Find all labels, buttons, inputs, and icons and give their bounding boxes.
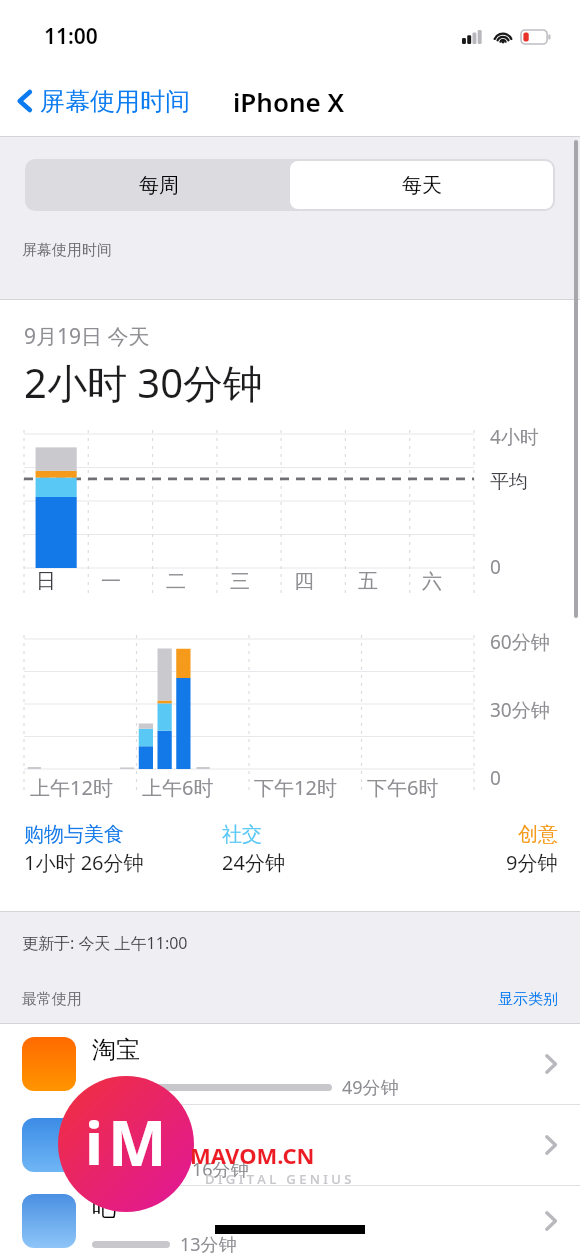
- staticText: 上午6时: [142, 774, 214, 801]
- other: Back: [14, 85, 36, 117]
- staticText: 下午12时: [254, 774, 337, 801]
- staticText: 二: [166, 569, 186, 594]
- staticText: i: [85, 1101, 103, 1183]
- staticText: 屏幕使用时间: [22, 241, 112, 260]
- staticText: 9月19日 今天: [24, 322, 150, 351]
- staticText: 淘宝: [92, 1035, 140, 1065]
- staticText: iPhone X: [233, 84, 345, 119]
- staticText: 30分钟: [490, 697, 550, 723]
- staticText: 每周: [139, 173, 179, 198]
- staticText: 0: [490, 554, 501, 580]
- staticText: 下午6时: [367, 774, 439, 801]
- staticText: 购物与美食: [24, 822, 124, 847]
- staticText: 三: [230, 569, 250, 594]
- staticText: 六: [422, 569, 442, 594]
- staticText: 16分钟: [192, 1157, 249, 1182]
- staticText: 日: [36, 569, 56, 594]
- staticText: 更新于: 今天 上午11:00: [22, 932, 188, 954]
- staticText: 0: [490, 765, 501, 791]
- staticText: 屏幕使用时间: [40, 86, 190, 117]
- staticText: 9分钟: [506, 849, 558, 876]
- staticText: 上午12时: [30, 774, 113, 801]
- staticText: 1小时 26分钟: [24, 849, 144, 876]
- staticText: 每天: [402, 173, 442, 198]
- staticText: 11:00: [44, 22, 98, 51]
- staticText: 社交: [222, 822, 262, 847]
- staticText: 平均: [490, 470, 528, 494]
- staticText: MAVOM.CN: [190, 1140, 315, 1170]
- button[interactable]: 16分钟: [0, 1105, 580, 1185]
- staticText: 五: [358, 569, 378, 594]
- staticText: M: [108, 1100, 167, 1184]
- staticText: 49分钟: [342, 1075, 399, 1100]
- staticText: D I G I T A L G E N I U S: [205, 1170, 352, 1188]
- staticText: 最常使用: [22, 990, 82, 1009]
- staticText: 显示类别: [498, 990, 558, 1009]
- button[interactable]: 每天: [290, 161, 553, 209]
- staticText: 2小时 30分钟: [24, 355, 264, 410]
- button[interactable]: 每周: [27, 161, 290, 209]
- staticText: 13分钟: [180, 1232, 237, 1256]
- staticText: 一: [101, 569, 121, 594]
- staticText: 24分钟: [222, 849, 285, 876]
- button[interactable]: 显示类别: [498, 990, 558, 1009]
- staticText: 四: [294, 569, 314, 594]
- staticText: 60分钟: [490, 629, 550, 655]
- button[interactable]: 吧: [0, 1186, 580, 1256]
- staticText: 吧: [92, 1192, 116, 1222]
- staticText: 创意: [518, 822, 558, 847]
- button[interactable]: 淘宝: [0, 1024, 580, 1104]
- button[interactable]: Back: [14, 85, 190, 117]
- staticText: 4小时: [490, 424, 539, 450]
